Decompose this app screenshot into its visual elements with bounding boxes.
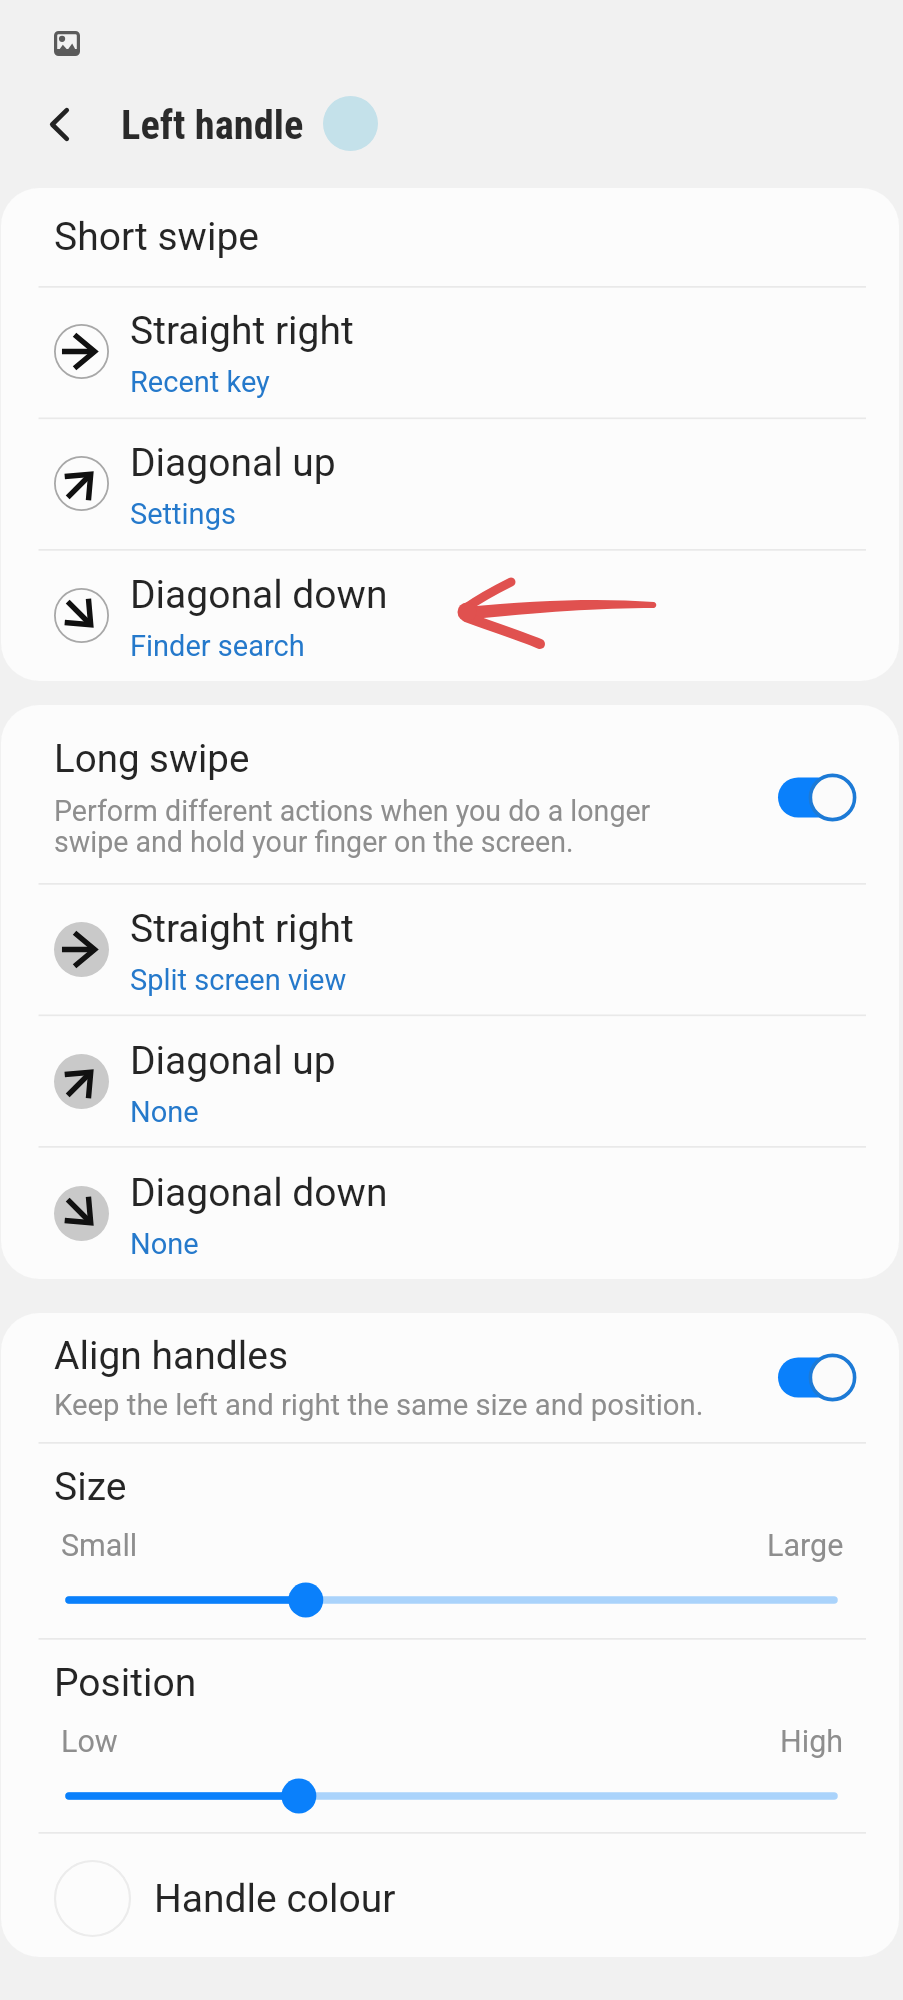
staticText: Recent key bbox=[130, 365, 270, 399]
staticText: Position bbox=[54, 1660, 197, 1706]
button[interactable]: Straight right bbox=[1, 883, 899, 1015]
button[interactable]: Diagonal up bbox=[1, 1015, 899, 1147]
staticText: Handle colour bbox=[154, 1876, 396, 1922]
button[interactable]: Straight right bbox=[1, 286, 899, 417]
staticText: Diagonal up bbox=[130, 440, 336, 486]
staticText: Align handles bbox=[54, 1333, 289, 1379]
button[interactable]: Toggle bbox=[778, 1353, 857, 1402]
staticText: None bbox=[130, 1095, 199, 1129]
staticText: Small bbox=[61, 1528, 138, 1564]
staticText: Short swipe bbox=[54, 214, 259, 260]
staticText: Keep the left and right the same size an… bbox=[54, 1388, 704, 1422]
staticText: Finder search bbox=[130, 629, 305, 663]
staticText: Split screen view bbox=[130, 963, 347, 997]
staticText: Large bbox=[767, 1528, 844, 1564]
staticText: Diagonal up bbox=[130, 1038, 336, 1084]
staticText: Settings bbox=[130, 497, 236, 531]
staticText: Size bbox=[54, 1464, 127, 1510]
staticText: Diagonal down bbox=[130, 1170, 388, 1216]
button[interactable]: Toggle bbox=[778, 773, 857, 822]
button[interactable]: Diagonal down bbox=[1, 549, 899, 681]
staticText: None bbox=[130, 1227, 199, 1261]
button[interactable]: Long swipe bbox=[54, 705, 857, 883]
staticText: Low bbox=[61, 1724, 118, 1760]
staticText: Perform different actions when you do a … bbox=[54, 794, 651, 859]
button[interactable]: Diagonal down bbox=[1, 1147, 899, 1279]
button[interactable]: Diagonal up bbox=[1, 417, 899, 549]
button[interactable]: Back bbox=[28, 93, 90, 155]
button[interactable]: Handle colour bbox=[1, 1832, 899, 1957]
button[interactable]: Size bbox=[66, 1577, 837, 1623]
staticText: High bbox=[780, 1724, 844, 1760]
staticText: Left handle bbox=[121, 101, 304, 148]
staticText: Diagonal down bbox=[130, 572, 388, 618]
staticText: Straight right bbox=[130, 308, 354, 354]
button[interactable]: Position bbox=[66, 1773, 837, 1819]
button[interactable]: Align handles bbox=[54, 1313, 857, 1442]
staticText: Straight right bbox=[130, 906, 354, 952]
staticText: Long swipe bbox=[54, 736, 250, 781]
